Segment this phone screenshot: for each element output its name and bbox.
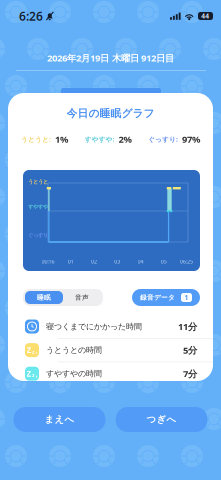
staticText: z [32, 372, 35, 379]
staticText: うとうとの時間 [46, 345, 102, 355]
staticText: うとうと [28, 178, 48, 185]
staticText: 06:25 [180, 258, 193, 265]
staticText: 01 [68, 258, 74, 265]
staticText: 2% [118, 133, 131, 145]
staticText: z [35, 350, 37, 355]
staticText: z [32, 348, 35, 355]
button[interactable]: Z [16, 362, 206, 385]
staticText: すやすや: [84, 135, 114, 144]
staticText: 11分 [178, 320, 197, 333]
staticText: 今日の睡眠グラフ [66, 107, 154, 120]
staticText: 03 [114, 258, 120, 265]
staticText: 1 [184, 293, 188, 302]
staticText: 2026年2月19日 木曜日 912日目 [47, 52, 174, 64]
staticText: 97% [182, 133, 200, 145]
staticText: 1% [55, 133, 68, 145]
staticText: 02 [91, 258, 97, 265]
button[interactable]: まえへ [13, 407, 105, 432]
button[interactable]: 録音データ [132, 289, 200, 306]
staticText: すやすやの時間 [46, 369, 102, 379]
staticText: 04 [137, 258, 143, 265]
staticText: うとうと: [21, 135, 51, 144]
staticText: 睡眠 [37, 293, 51, 302]
staticText: 録音データ [140, 293, 175, 302]
staticText: 44 [201, 11, 209, 20]
staticText: 05 [161, 258, 167, 265]
staticText: Z [26, 368, 31, 379]
staticText: つぎへ [146, 414, 176, 425]
staticText: ぐっすり: [148, 135, 178, 144]
staticText: z [35, 374, 37, 379]
staticText: まえへ [44, 414, 74, 425]
button[interactable]: つぎへ [115, 407, 207, 432]
button[interactable]: Z [16, 339, 206, 362]
staticText: ぐっすり [28, 232, 48, 239]
staticText: 5分 [183, 344, 197, 356]
staticText: 6:26 [19, 8, 43, 24]
staticText: すやすや [28, 203, 48, 210]
button[interactable]: 寝つくまでにかかった時間 [16, 315, 206, 338]
staticText: 7分 [183, 367, 197, 380]
button[interactable]: 音声 [63, 291, 101, 304]
button[interactable]: 睡眠 [25, 291, 63, 304]
staticText: Z [26, 345, 31, 355]
staticText: 00:16 [41, 258, 54, 265]
staticText: 寝つくまでにかかった時間 [46, 322, 142, 331]
staticText: 音声 [75, 293, 89, 302]
